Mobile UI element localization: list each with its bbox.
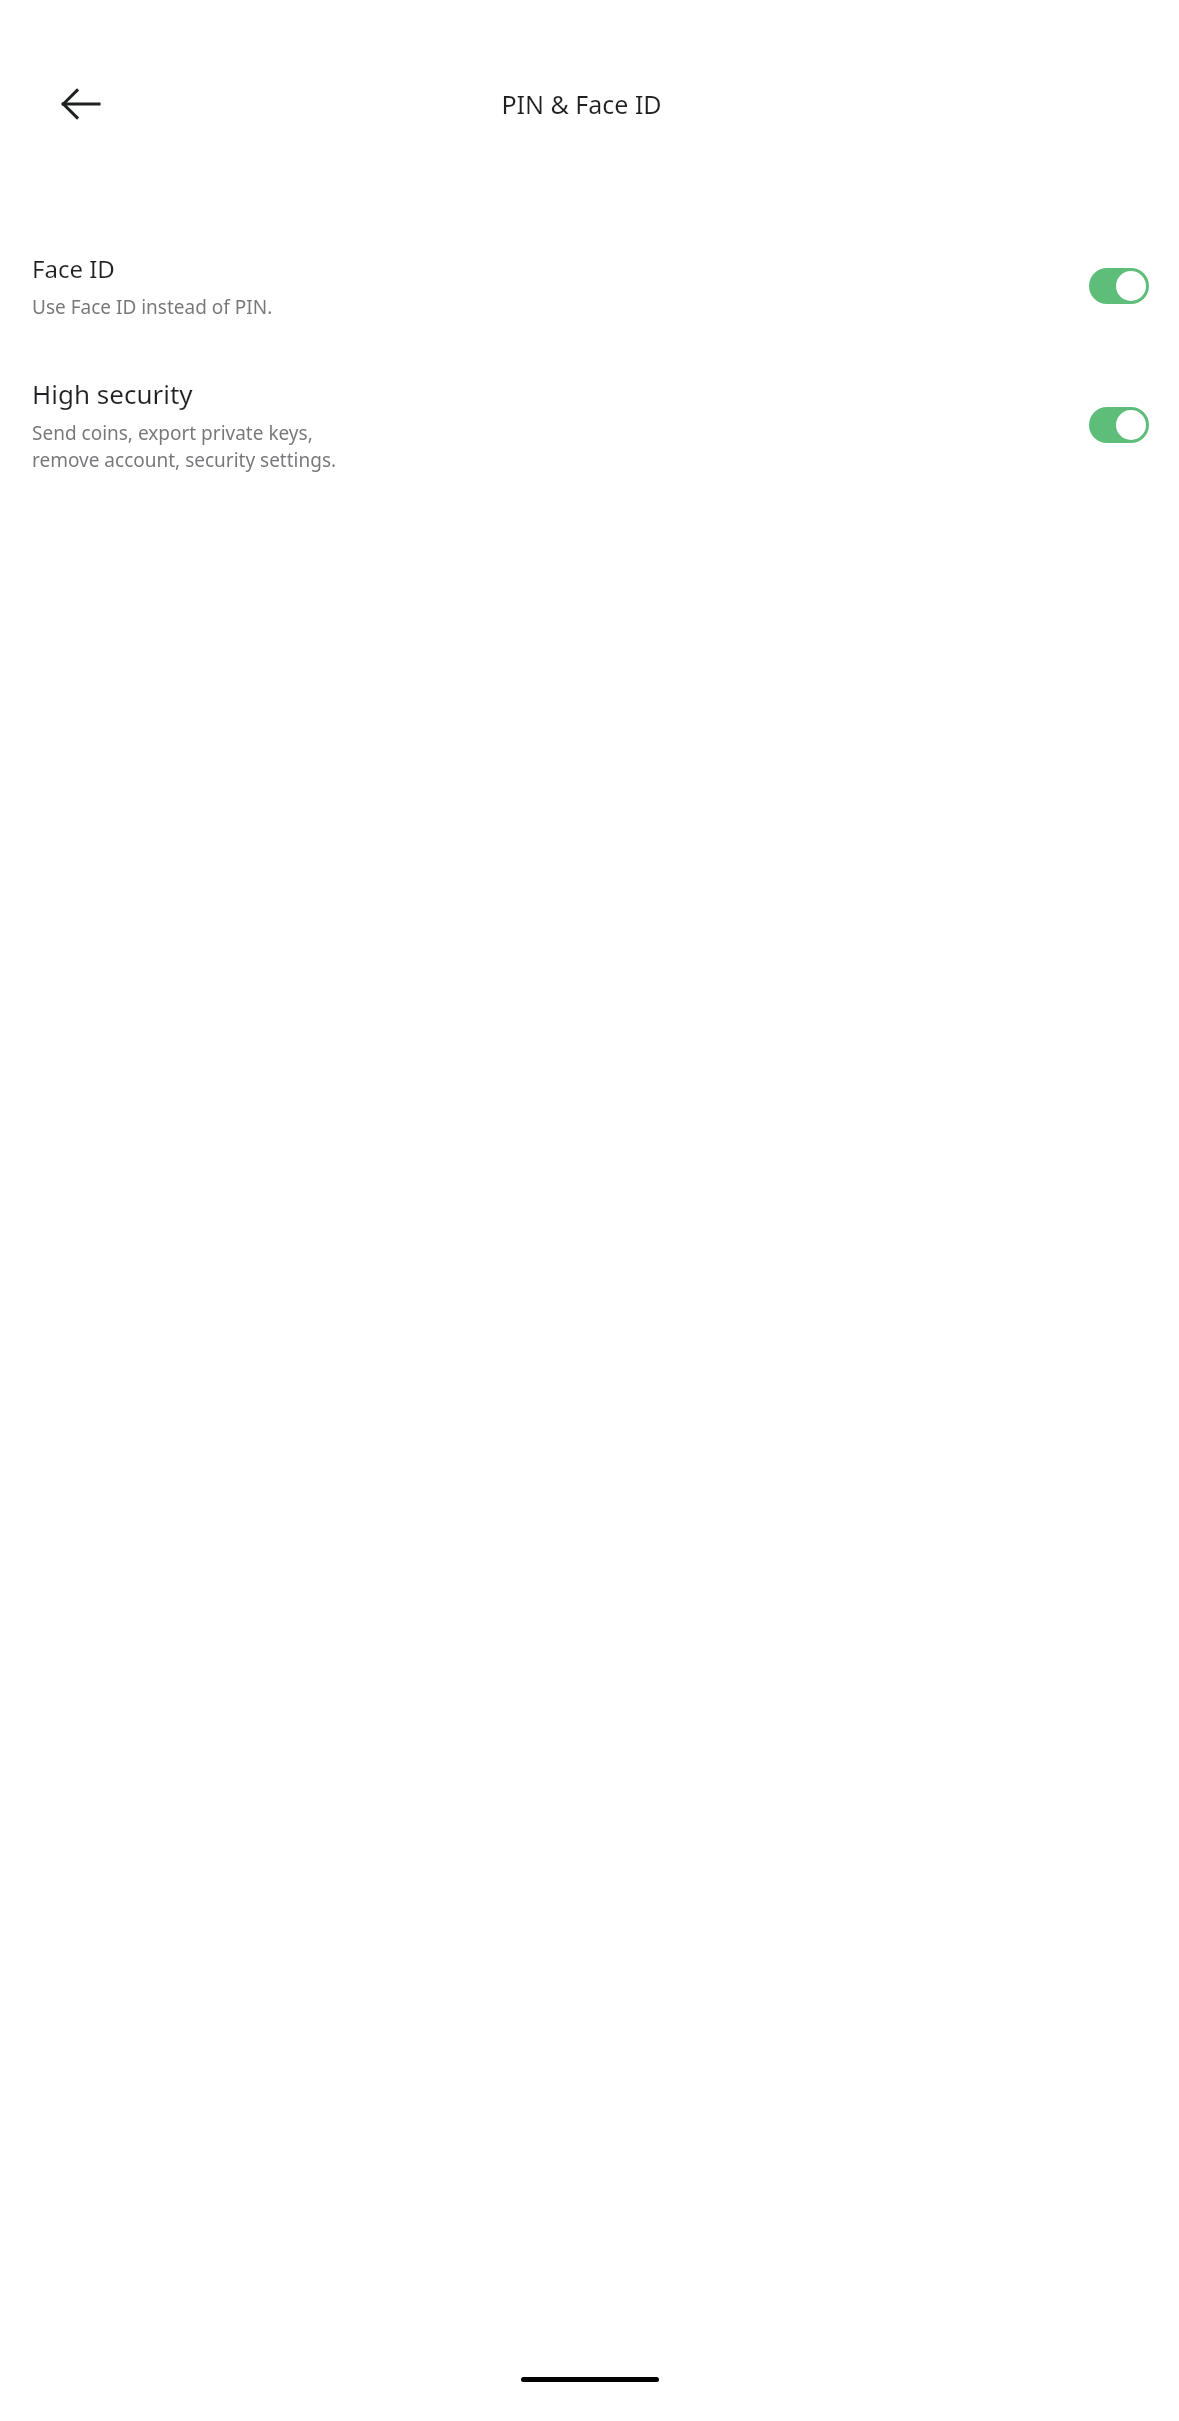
button[interactable]: Back <box>48 71 114 137</box>
button[interactable]: High security toggle, on <box>1089 407 1149 443</box>
staticText: Send coins, export private keys, remove … <box>32 420 384 473</box>
button[interactable]: Face ID <box>0 252 1179 320</box>
button[interactable]: Face ID toggle, on <box>1089 268 1149 304</box>
staticText: Use Face ID instead of PIN. <box>32 294 273 320</box>
staticText: Face ID <box>32 252 115 285</box>
button[interactable]: High security <box>0 376 1179 473</box>
staticText: High security <box>32 376 193 411</box>
staticText: PIN & Face ID <box>501 87 662 121</box>
